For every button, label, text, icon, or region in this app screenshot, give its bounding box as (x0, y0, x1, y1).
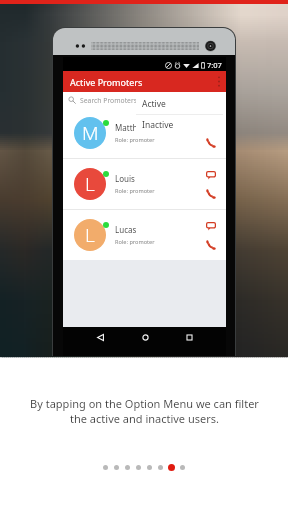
staticText: By tapping on the Option Menu we can fil… (30, 396, 259, 426)
button[interactable]: Message (204, 220, 217, 233)
staticText: Lucas (115, 224, 137, 235)
button[interactable]: Home (137, 329, 153, 345)
button[interactable] (122, 463, 133, 472)
staticText: L (85, 222, 95, 248)
button[interactable] (100, 463, 111, 472)
button[interactable] (111, 463, 122, 472)
button[interactable]: Message (204, 169, 217, 182)
staticText: Inactive (142, 119, 174, 131)
staticText: Active Promoters (70, 76, 143, 88)
button[interactable]: L (63, 159, 226, 209)
staticText: 7:07 (207, 60, 222, 70)
staticText: M (82, 120, 99, 146)
button[interactable] (133, 463, 144, 472)
button[interactable]: Back (92, 329, 108, 345)
staticText: Matthew (115, 122, 149, 133)
button[interactable]: Search Promoters (63, 92, 226, 108)
button[interactable] (144, 463, 155, 472)
staticText: Role: promoter (115, 187, 155, 195)
button[interactable] (155, 463, 166, 472)
staticText: Role: promoter (115, 238, 155, 246)
button[interactable]: Call (204, 136, 217, 149)
button[interactable]: Active (136, 93, 223, 114)
button[interactable]: L (63, 210, 226, 260)
button[interactable] (177, 463, 188, 472)
staticText: L (85, 171, 95, 197)
button[interactable]: M (63, 108, 226, 158)
button[interactable]: Call (204, 187, 217, 200)
button[interactable]: More options (212, 71, 226, 92)
staticText: Role: promoter (115, 136, 155, 144)
staticText: Active (142, 98, 166, 110)
staticText: Search Promoters (80, 96, 137, 105)
button[interactable]: Inactive (136, 115, 223, 134)
button[interactable]: Call (204, 238, 217, 251)
button[interactable] (166, 463, 177, 472)
staticText: Louis (115, 173, 135, 184)
button[interactable]: Recents (181, 329, 197, 345)
